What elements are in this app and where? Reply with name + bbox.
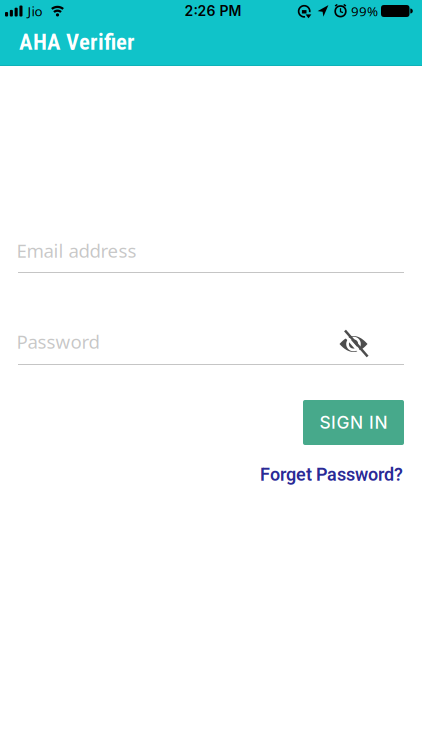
staticText: AHA Verifier: [19, 29, 135, 55]
staticText: Jio: [27, 2, 42, 20]
staticText: Forget Password?: [260, 464, 403, 485]
staticText: Email address: [16, 238, 136, 263]
staticText: 2:26 PM: [184, 2, 241, 19]
button[interactable]: SIGN IN: [303, 400, 404, 445]
staticText: 99%: [351, 2, 378, 20]
button[interactable]: Forget Password?: [260, 464, 403, 485]
button[interactable]: [339, 330, 368, 357]
staticText: Password: [16, 329, 99, 354]
staticText: SIGN IN: [319, 412, 387, 433]
